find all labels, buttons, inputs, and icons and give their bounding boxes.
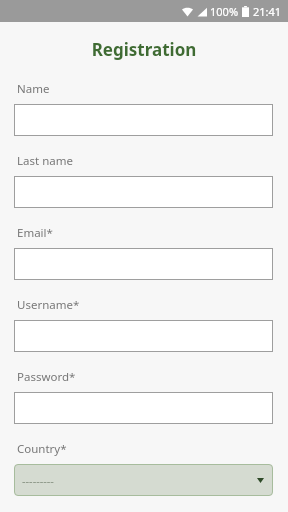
- staticText: Password*: [17, 369, 76, 385]
- staticText: Email*: [17, 225, 53, 241]
- button[interactable]: [14, 248, 273, 280]
- staticText: Last name: [17, 153, 73, 169]
- button[interactable]: [14, 104, 273, 136]
- button[interactable]: Select country: [14, 464, 273, 496]
- staticText: ---------: [22, 473, 54, 488]
- button[interactable]: [14, 320, 273, 352]
- staticText: Username*: [17, 297, 80, 313]
- staticText: 21:41: [253, 4, 282, 19]
- button[interactable]: [14, 176, 273, 208]
- staticText: 100%: [210, 4, 239, 19]
- staticText: Country*: [17, 441, 67, 457]
- staticText: Name: [17, 81, 50, 97]
- staticText: Registration: [0, 38, 288, 61]
- button[interactable]: [14, 392, 273, 424]
